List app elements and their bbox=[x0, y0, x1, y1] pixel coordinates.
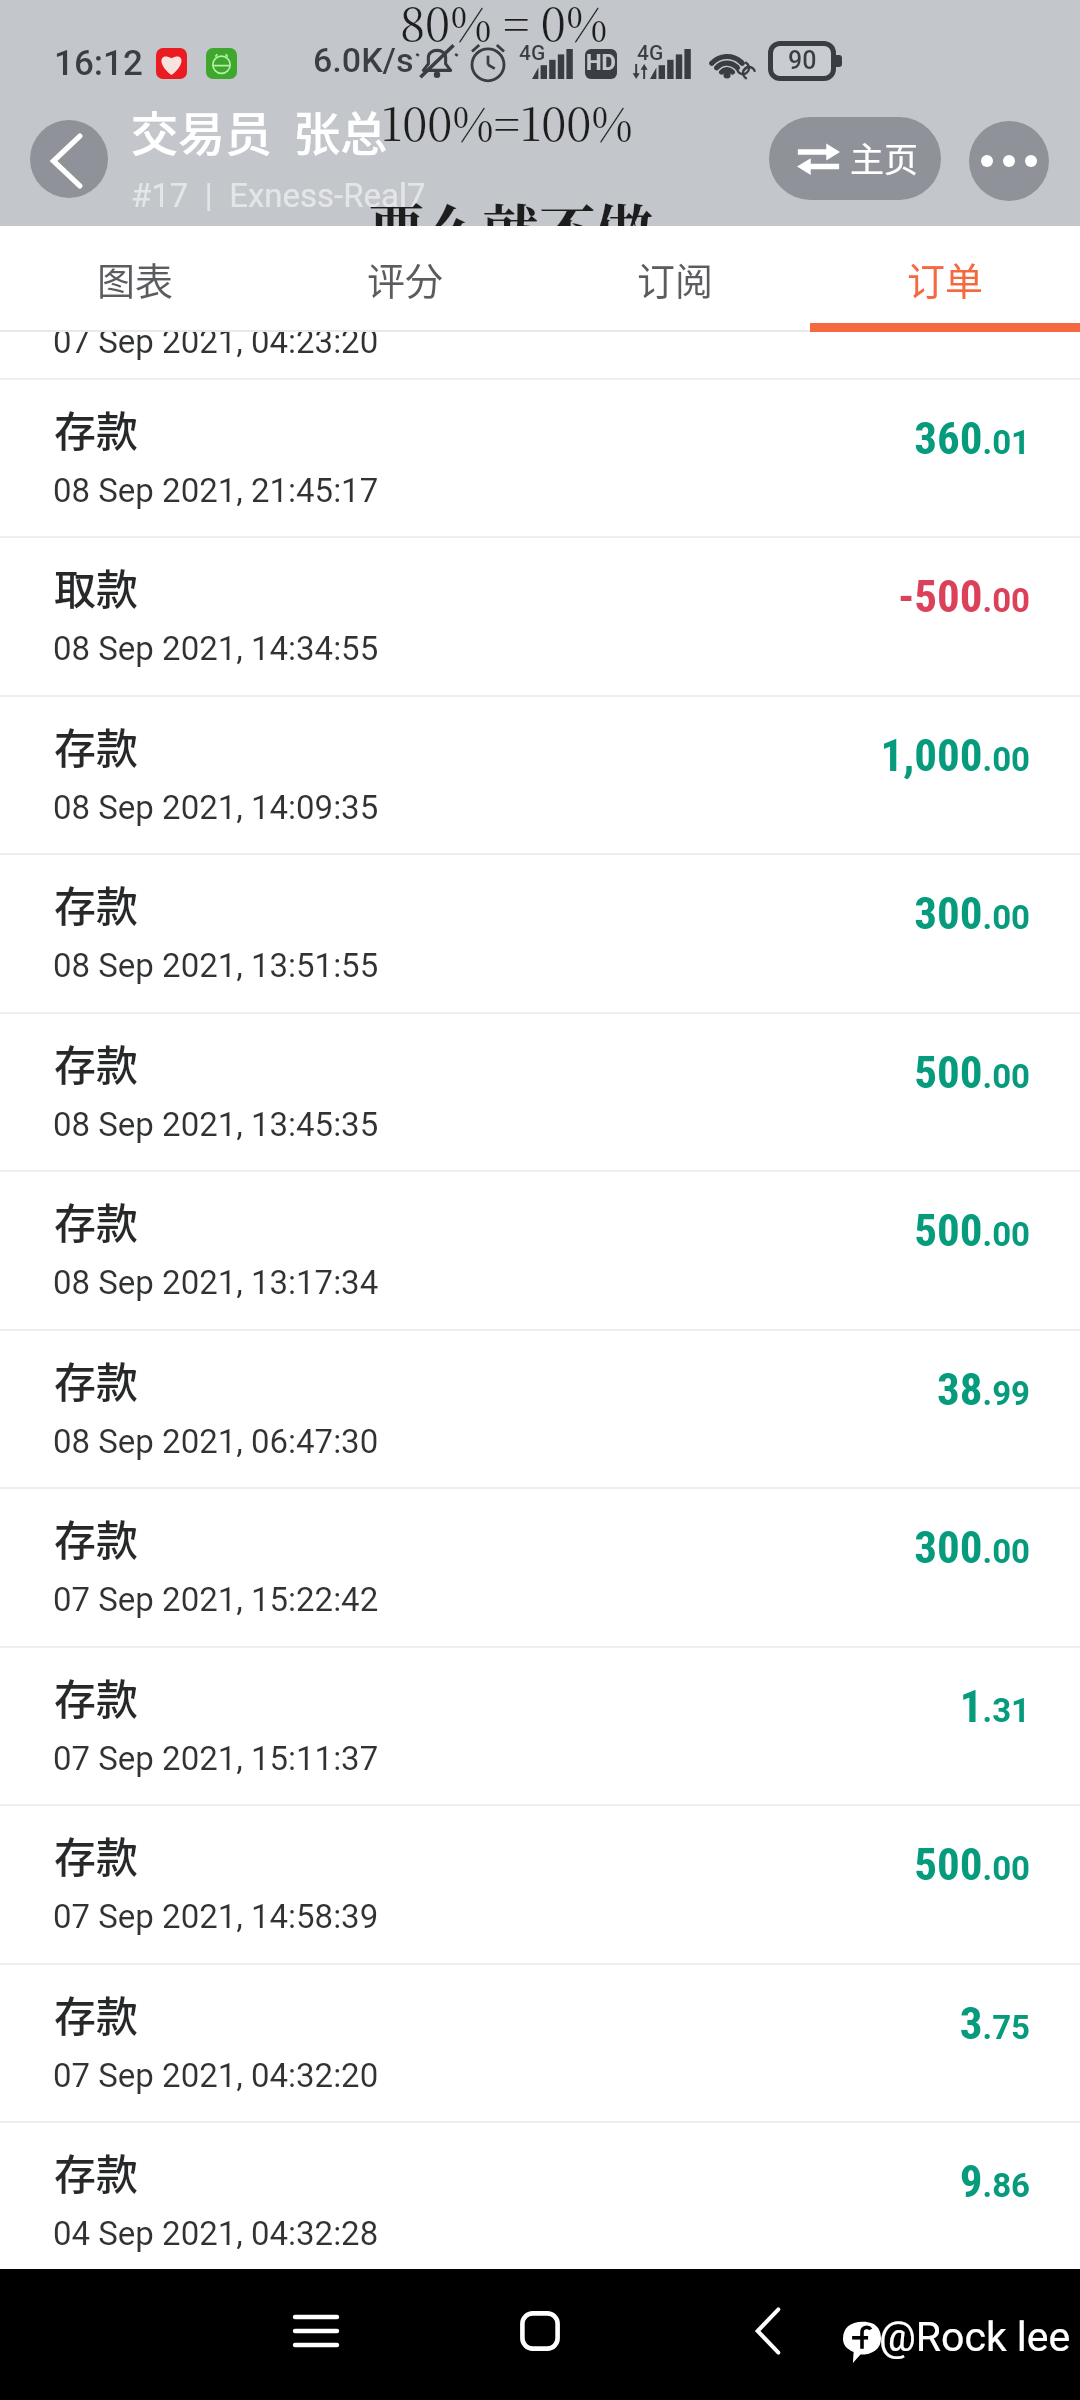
staticText: 1,000.00 bbox=[0, 729, 1030, 782]
staticText: 存款 bbox=[54, 1507, 139, 1568]
staticText: 4G bbox=[519, 41, 546, 66]
button[interactable]: 存款 bbox=[0, 695, 1080, 853]
staticText: 500.00 bbox=[0, 1046, 1030, 1099]
staticText: 300.00 bbox=[0, 887, 1030, 940]
staticText: 07 Sep 2021, 04:32:20 bbox=[53, 2056, 379, 2095]
staticText: 08 Sep 2021, 13:45:35 bbox=[53, 1105, 379, 1144]
staticText: 07 Sep 2021, 15:11:37 bbox=[53, 1739, 379, 1778]
button[interactable]: 存款 bbox=[0, 1963, 1080, 2121]
staticText: 存款 bbox=[54, 873, 139, 934]
staticText: 07 Sep 2021, 14:58:39 bbox=[53, 1897, 379, 1936]
staticText: 存款 bbox=[54, 398, 139, 459]
button[interactable]: Recent apps bbox=[278, 2293, 354, 2369]
button[interactable]: More options bbox=[969, 121, 1049, 201]
staticText: 08 Sep 2021, 13:17:34 bbox=[53, 1263, 379, 1302]
staticText: 1.31 bbox=[0, 1680, 1030, 1733]
button[interactable]: 存款 bbox=[0, 853, 1080, 1011]
staticText: 评分 bbox=[367, 251, 444, 306]
button[interactable]: 存款 bbox=[0, 1329, 1080, 1487]
staticText: 07 Sep 2021, 15:22:42 bbox=[53, 1580, 379, 1619]
staticText: 存款 bbox=[54, 1190, 139, 1251]
staticText: 38.99 bbox=[0, 1363, 1030, 1416]
staticText: 08 Sep 2021, 06:47:30 bbox=[53, 1422, 379, 1461]
button[interactable]: 评分 bbox=[270, 226, 540, 332]
button[interactable]: 存款 bbox=[0, 2121, 1080, 2279]
staticText: 图表 bbox=[97, 251, 174, 306]
staticText: 04 Sep 2021, 04:32:28 bbox=[53, 2214, 379, 2253]
staticText: 要么就不做 bbox=[368, 186, 653, 226]
staticText: 存款 bbox=[54, 715, 139, 776]
staticText: 80% = 0% bbox=[400, 0, 608, 54]
staticText: 订单 bbox=[907, 251, 984, 306]
staticText: 存款 bbox=[54, 1983, 139, 2044]
staticText: 6.0K/s bbox=[313, 40, 414, 80]
staticText: 360.01 bbox=[0, 412, 1030, 465]
button[interactable]: 存款 bbox=[0, 1170, 1080, 1328]
staticText: 存款 bbox=[54, 1824, 139, 1885]
button[interactable]: 存款 bbox=[0, 378, 1080, 536]
staticText: 16:12 bbox=[54, 43, 143, 84]
button[interactable]: 订阅 bbox=[540, 226, 810, 332]
button[interactable]: 存款 bbox=[0, 1487, 1080, 1645]
button[interactable]: 取款 bbox=[0, 536, 1080, 694]
staticText: 9.86 bbox=[0, 2155, 1030, 2208]
button[interactable]: 订单 bbox=[810, 226, 1080, 332]
staticText: 08 Sep 2021, 14:09:35 bbox=[53, 788, 379, 827]
staticText: 90 bbox=[788, 46, 817, 75]
staticText: 主页 bbox=[850, 133, 918, 182]
staticText: 4G bbox=[637, 41, 664, 66]
staticText: 存款 bbox=[54, 1666, 139, 1727]
staticText: 07 Sep 2021, 04:23:20 bbox=[53, 322, 379, 361]
staticText: 500.00 bbox=[0, 1838, 1030, 1891]
staticText: 100%=100% bbox=[381, 89, 633, 154]
staticText: HD bbox=[586, 50, 616, 76]
button[interactable]: Back bbox=[730, 2293, 806, 2369]
staticText: #17 | Exness-Real7 bbox=[131, 176, 426, 215]
button[interactable]: 图表 bbox=[0, 226, 270, 332]
button[interactable]: 存款 bbox=[0, 1012, 1080, 1170]
staticText: 存款 bbox=[54, 1349, 139, 1410]
staticText: 08 Sep 2021, 13:51:55 bbox=[53, 946, 379, 985]
button[interactable]: Back bbox=[30, 120, 108, 198]
staticText: 500.00 bbox=[0, 1204, 1030, 1257]
staticText: 08 Sep 2021, 14:34:55 bbox=[53, 629, 379, 668]
staticText: 08 Sep 2021, 21:45:17 bbox=[53, 471, 379, 510]
staticText: 交易员 张总 bbox=[131, 96, 388, 164]
staticText: 取款 bbox=[54, 556, 139, 617]
staticText: 存款 bbox=[54, 1032, 139, 1093]
staticText: 300.00 bbox=[0, 1521, 1030, 1574]
button[interactable]: 主页 bbox=[769, 117, 941, 200]
staticText: 3.75 bbox=[0, 1997, 1030, 2050]
staticText: 存款 bbox=[54, 2141, 139, 2202]
button[interactable]: 存款 bbox=[0, 1804, 1080, 1962]
staticText: 订阅 bbox=[637, 251, 714, 306]
staticText: -500.00 bbox=[0, 570, 1030, 623]
staticText: @Rock lee bbox=[879, 2313, 1071, 2361]
button[interactable]: Home bbox=[502, 2293, 578, 2369]
button[interactable]: 存款 bbox=[0, 1646, 1080, 1804]
